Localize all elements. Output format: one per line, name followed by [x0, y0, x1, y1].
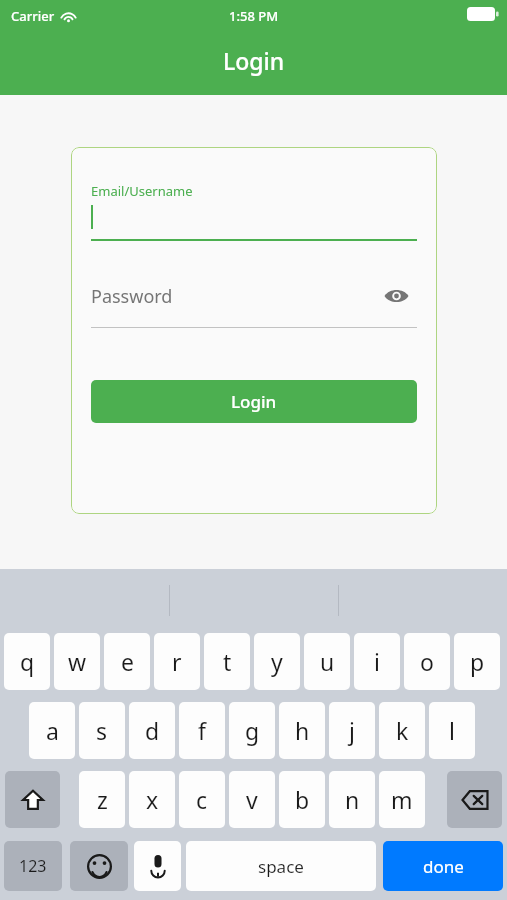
button[interactable]: x	[129, 771, 175, 828]
staticText: g	[245, 715, 260, 746]
button[interactable]: t	[204, 633, 250, 690]
staticText: x	[146, 784, 159, 815]
button[interactable]: y	[254, 633, 300, 690]
staticText: Password	[91, 284, 173, 309]
button[interactable]: c	[179, 771, 225, 828]
staticText: done	[423, 855, 464, 878]
staticText: m	[391, 784, 413, 815]
button[interactable]: o	[404, 633, 450, 690]
staticText: Email/Username	[91, 182, 193, 200]
button[interactable]: z	[79, 771, 125, 828]
button[interactable]: h	[279, 702, 325, 759]
button[interactable]: 123	[4, 841, 62, 891]
staticText: d	[145, 715, 160, 746]
button[interactable]: r	[154, 633, 200, 690]
button[interactable]: w	[54, 633, 100, 690]
staticText: t	[223, 646, 232, 677]
staticText: e	[121, 646, 134, 677]
staticText: z	[97, 784, 108, 815]
button[interactable]: l	[429, 702, 475, 759]
staticText: v	[246, 784, 258, 815]
staticText: Login	[231, 390, 277, 413]
staticText: y	[271, 646, 283, 677]
button[interactable]: Backspace	[447, 771, 502, 828]
button[interactable]: a	[29, 702, 75, 759]
staticText: i	[374, 646, 380, 677]
button[interactable]: b	[279, 771, 325, 828]
staticText: space	[258, 855, 304, 878]
staticText: j	[349, 715, 355, 746]
button[interactable]: e	[104, 633, 150, 690]
staticText: Carrier	[11, 7, 55, 25]
staticText: u	[320, 646, 335, 677]
staticText: o	[420, 646, 434, 677]
staticText: n	[345, 784, 360, 815]
button[interactable]: j	[329, 702, 375, 759]
staticText: r	[172, 646, 182, 677]
button[interactable]: q	[4, 633, 50, 690]
button[interactable]: Emoji	[70, 841, 128, 891]
staticText: k	[396, 715, 409, 746]
staticText: f	[198, 715, 206, 746]
staticText: p	[470, 646, 485, 677]
staticText: 1:58 PM	[229, 7, 279, 25]
button[interactable]: done	[383, 841, 503, 891]
button[interactable]: n	[329, 771, 375, 828]
button[interactable]: s	[79, 702, 125, 759]
staticText: h	[295, 715, 310, 746]
staticText: 123	[19, 855, 47, 877]
staticText: c	[196, 784, 208, 815]
button[interactable]: u	[304, 633, 350, 690]
button[interactable]: Shift	[5, 771, 60, 828]
button[interactable]: Voice input	[134, 841, 181, 891]
staticText: b	[295, 784, 310, 815]
staticText: l	[449, 715, 455, 746]
button[interactable]: Login	[91, 380, 417, 423]
button[interactable]: f	[179, 702, 225, 759]
button[interactable]: g	[229, 702, 275, 759]
button[interactable]: v	[229, 771, 275, 828]
button[interactable]: k	[379, 702, 425, 759]
button[interactable]: p	[454, 633, 500, 690]
button[interactable]: d	[129, 702, 175, 759]
button[interactable]: space	[186, 841, 376, 891]
staticText: Login	[223, 45, 285, 76]
staticText: q	[20, 646, 35, 677]
staticText: a	[46, 715, 59, 746]
button[interactable]: Show password	[374, 278, 418, 314]
button[interactable]: i	[354, 633, 400, 690]
staticText: s	[96, 715, 108, 746]
button[interactable]: m	[379, 771, 425, 828]
staticText: w	[68, 646, 87, 677]
